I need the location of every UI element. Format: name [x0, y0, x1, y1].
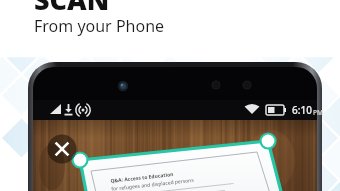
button[interactable]: Close scanner	[47, 134, 77, 164]
